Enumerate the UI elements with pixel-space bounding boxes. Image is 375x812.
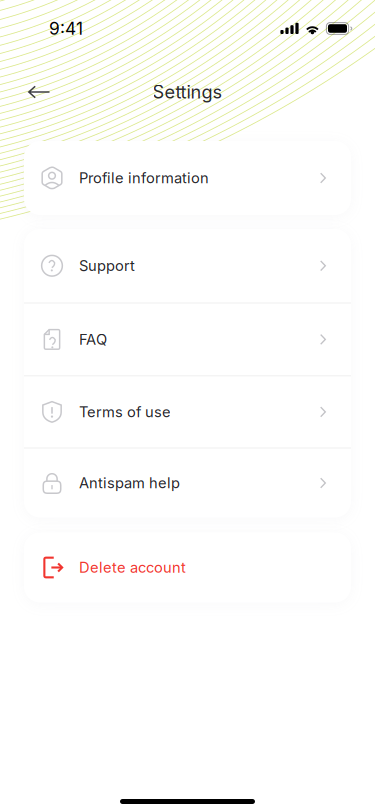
button[interactable]: FAQ — [24, 303, 351, 375]
button[interactable]: Profile information — [24, 141, 351, 215]
button[interactable]: Support — [24, 229, 351, 302]
staticText: Support — [79, 257, 135, 275]
button[interactable]: Back — [17, 70, 61, 114]
button[interactable]: Delete account — [24, 532, 351, 602]
staticText: Settings — [152, 81, 222, 103]
staticText: FAQ — [79, 330, 107, 348]
staticText: Delete account — [79, 559, 186, 576]
button[interactable]: Terms of use — [24, 376, 351, 447]
staticText: Antispam help — [79, 474, 180, 492]
button[interactable]: Antispam help — [24, 448, 351, 517]
staticText: Terms of use — [79, 403, 171, 421]
staticText: 9:41 — [49, 18, 83, 39]
staticText: Profile information — [79, 169, 209, 187]
